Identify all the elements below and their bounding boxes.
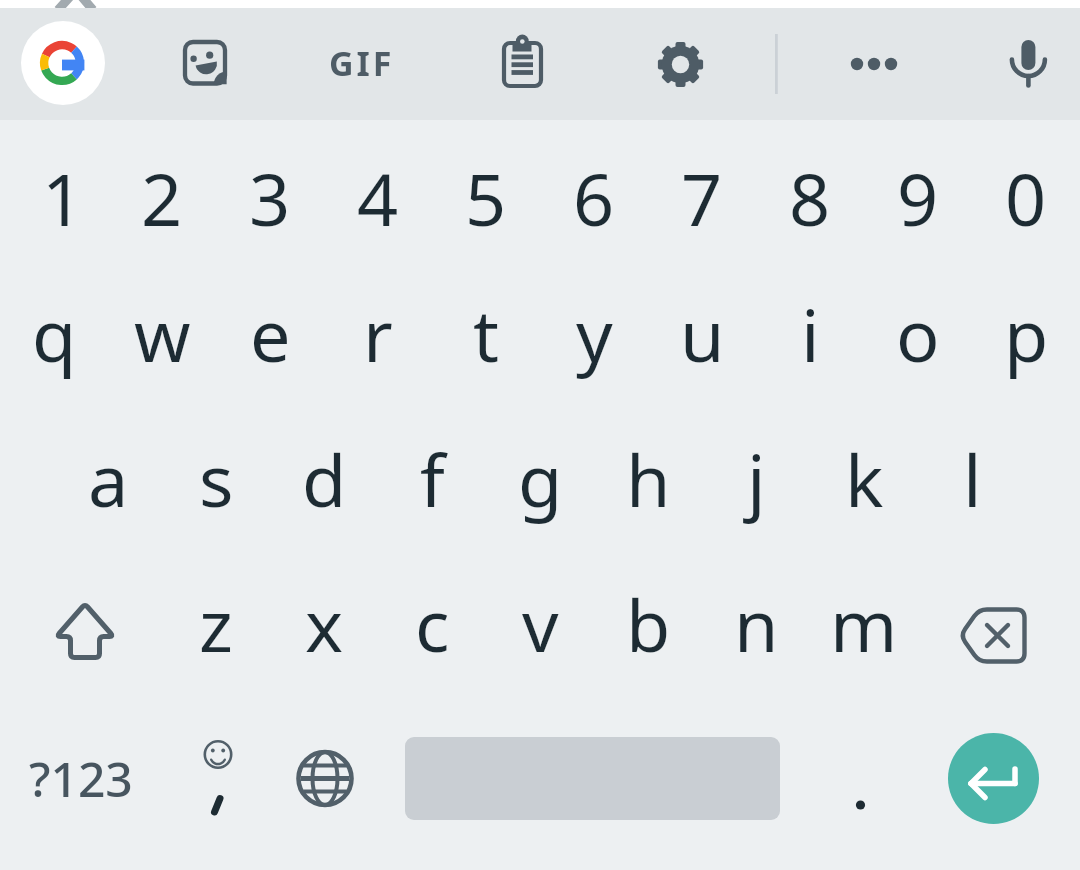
button[interactable]: m <box>810 559 918 704</box>
button[interactable]: p <box>972 269 1080 414</box>
staticText: s <box>199 430 234 528</box>
staticText: u <box>680 285 725 383</box>
button[interactable]: q <box>0 269 108 414</box>
button[interactable] <box>988 23 1068 103</box>
staticText: 7 <box>681 149 723 247</box>
button[interactable]: 9 <box>864 124 972 269</box>
staticText: b <box>626 575 671 673</box>
button[interactable] <box>641 23 721 103</box>
button[interactable]: h <box>594 414 702 559</box>
staticText: 5 <box>465 149 507 247</box>
staticText: g <box>518 430 563 528</box>
button[interactable]: j <box>702 414 810 559</box>
button[interactable]: GIF <box>305 27 419 99</box>
button[interactable]: a <box>54 414 162 559</box>
staticText: i <box>801 285 820 383</box>
staticText: m <box>830 575 898 673</box>
button[interactable]: i <box>756 269 864 414</box>
button[interactable] <box>918 559 1080 704</box>
button[interactable]: 7 <box>648 124 756 269</box>
staticText: 8 <box>789 149 831 247</box>
button[interactable]: 8 <box>756 124 864 269</box>
staticText: 1 <box>42 149 84 247</box>
button[interactable]: s <box>162 414 270 559</box>
staticText: y <box>576 285 613 383</box>
button[interactable]: b <box>594 559 702 704</box>
button[interactable]: 3 <box>216 124 324 269</box>
staticText: 6 <box>573 149 615 247</box>
button[interactable]: v <box>486 559 594 704</box>
staticText: o <box>896 285 940 383</box>
button[interactable]: l <box>918 414 1026 559</box>
button[interactable]: g <box>486 414 594 559</box>
button[interactable]: x <box>270 559 378 704</box>
button[interactable] <box>165 23 245 103</box>
button[interactable]: 4 <box>324 124 432 269</box>
staticText: t <box>473 285 499 383</box>
staticText: r <box>363 285 393 383</box>
staticText: 4 <box>357 149 399 247</box>
staticText: GIF <box>329 40 395 86</box>
staticText: d <box>302 430 347 528</box>
staticText: z <box>199 575 233 673</box>
staticText: 2 <box>141 149 183 247</box>
button[interactable]: 1 <box>9 124 117 269</box>
staticText: 3 <box>249 149 291 247</box>
button[interactable]: 2 <box>108 124 216 269</box>
staticText: f <box>420 430 445 528</box>
button[interactable] <box>162 704 270 849</box>
button[interactable]: t <box>432 269 540 414</box>
button[interactable]: r <box>324 269 432 414</box>
staticText: j <box>747 430 766 528</box>
button[interactable] <box>834 23 914 103</box>
button[interactable]: 0 <box>972 124 1080 269</box>
button[interactable]: z <box>162 559 270 704</box>
staticText: x <box>305 575 344 673</box>
button[interactable] <box>322 23 402 103</box>
button[interactable]: n <box>702 559 810 704</box>
staticText: q <box>32 285 77 383</box>
button[interactable] <box>482 23 562 103</box>
button[interactable]: e <box>216 269 324 414</box>
staticText: 0 <box>1005 149 1047 247</box>
staticText: k <box>845 430 884 528</box>
staticText: ?123 <box>29 746 133 811</box>
button[interactable]: d <box>270 414 378 559</box>
button[interactable]: o <box>864 269 972 414</box>
staticText: a <box>88 430 129 528</box>
staticText: w <box>134 285 191 383</box>
staticText: h <box>626 430 671 528</box>
staticText: p <box>1004 285 1049 383</box>
button[interactable]: w <box>108 269 216 414</box>
staticText: c <box>415 575 450 673</box>
button[interactable]: k <box>810 414 918 559</box>
staticText: n <box>734 575 779 673</box>
button[interactable] <box>270 704 378 849</box>
staticText: v <box>522 575 559 673</box>
button[interactable]: 5 <box>432 124 540 269</box>
button[interactable] <box>810 704 918 849</box>
staticText: l <box>963 430 982 528</box>
button[interactable] <box>948 733 1039 824</box>
button[interactable]: y <box>540 269 648 414</box>
button[interactable] <box>23 23 103 103</box>
button[interactable]: f <box>378 414 486 559</box>
button[interactable]: 6 <box>540 124 648 269</box>
button[interactable]: c <box>378 559 486 704</box>
button[interactable] <box>0 559 162 704</box>
staticText: e <box>250 285 291 383</box>
button[interactable]: ?123 <box>0 704 162 849</box>
button[interactable]: u <box>648 269 756 414</box>
staticText: 9 <box>897 149 939 247</box>
